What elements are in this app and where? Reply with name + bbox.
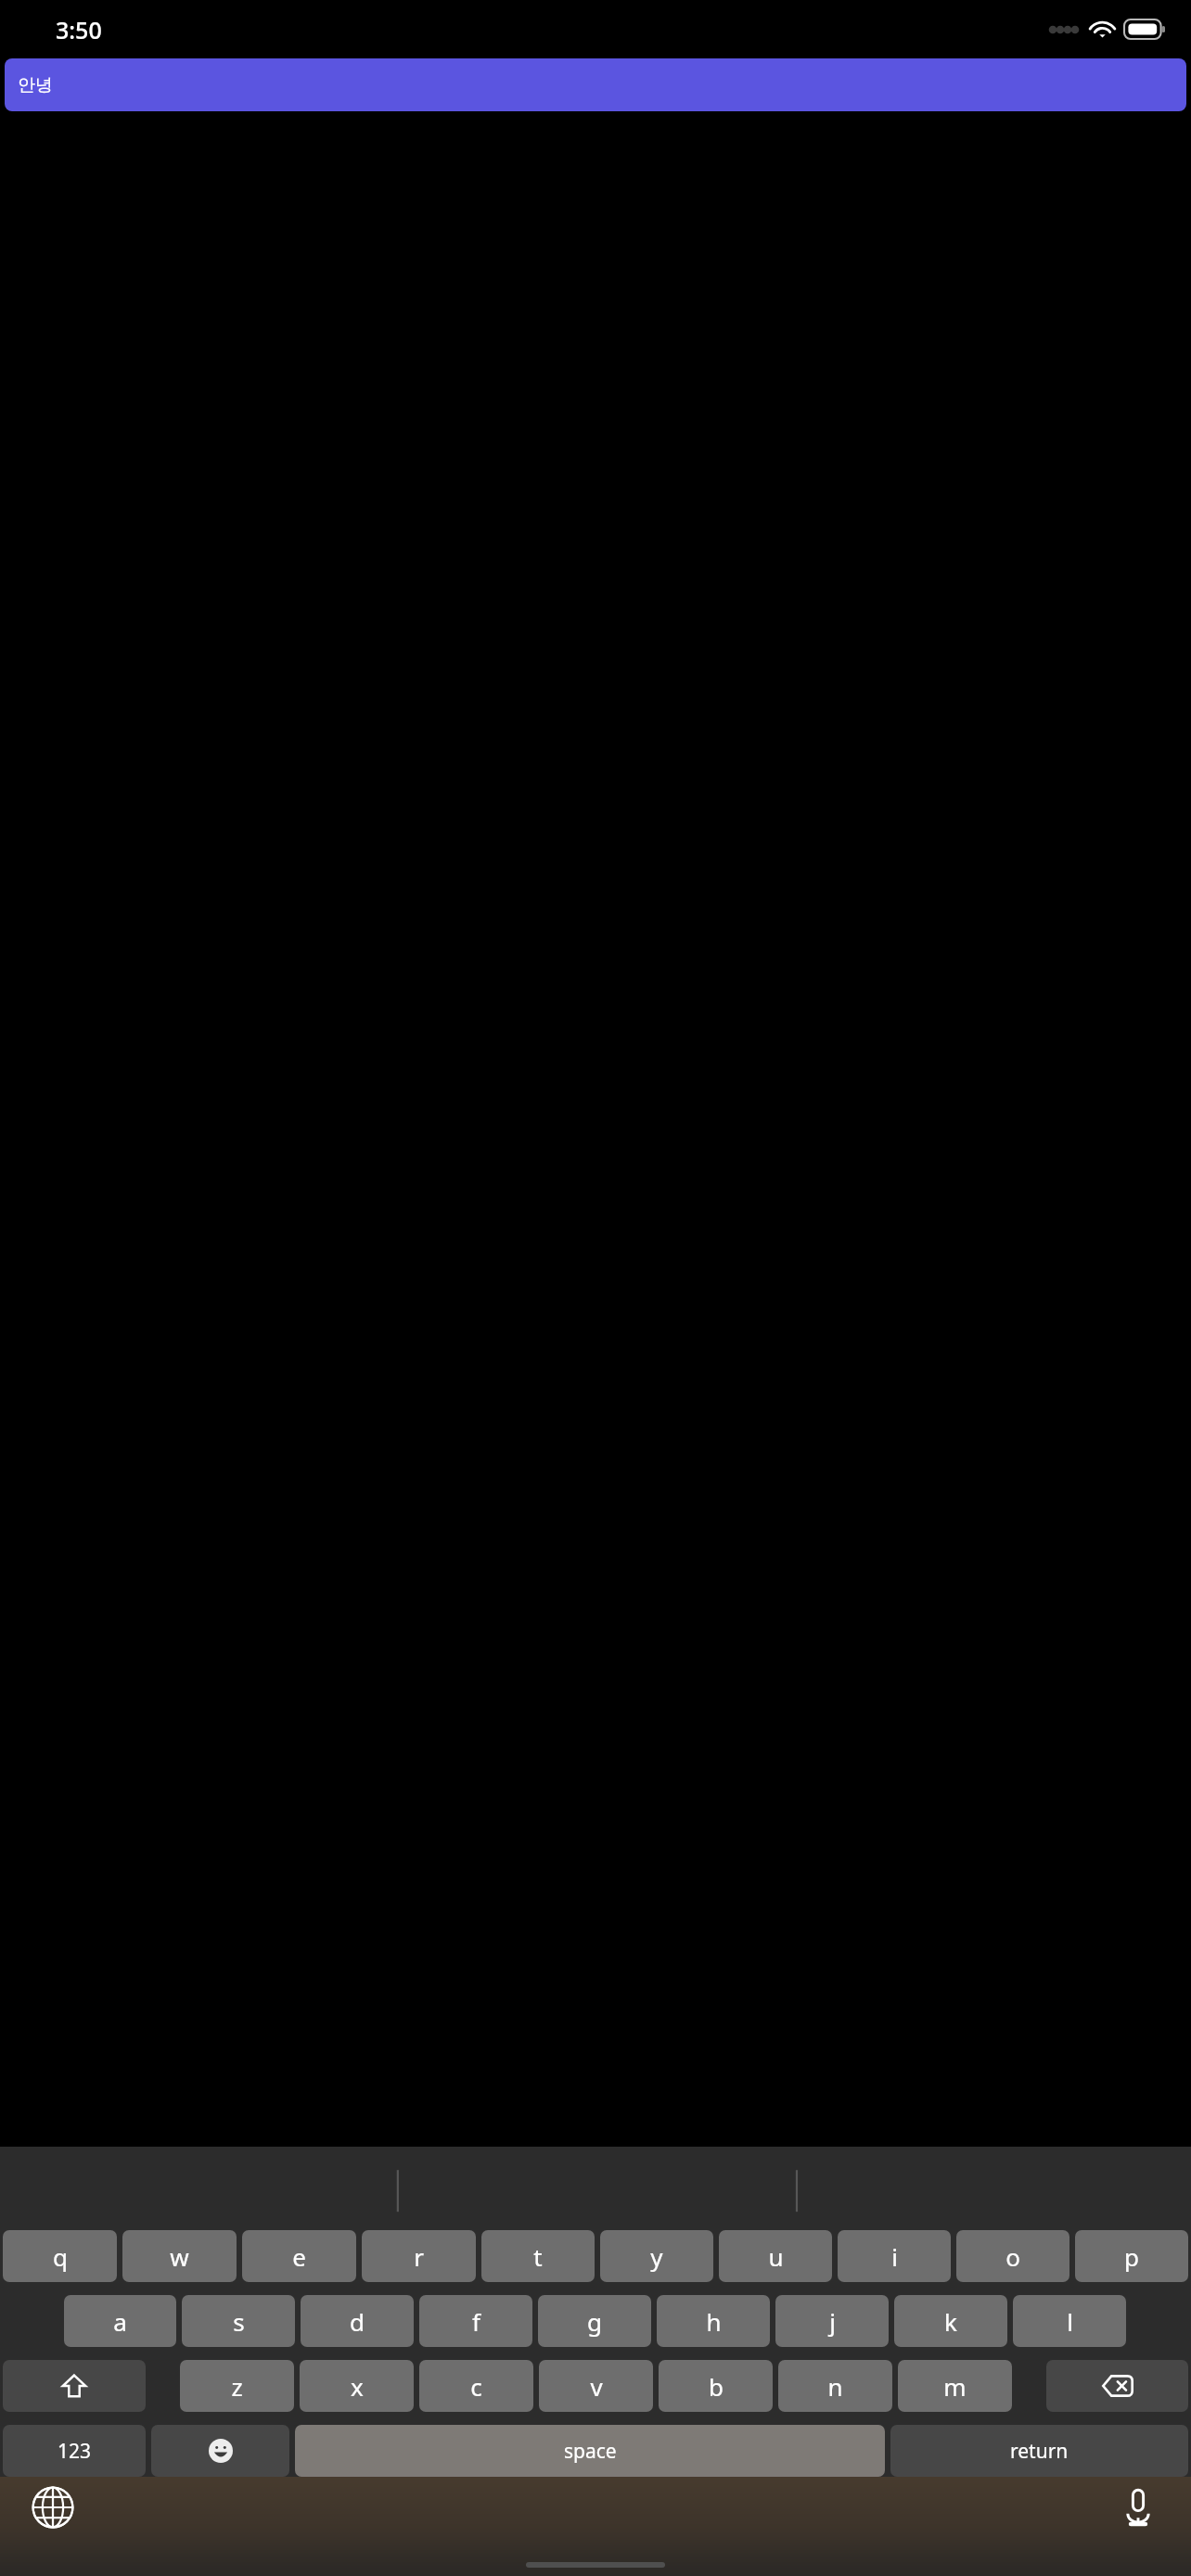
- button[interactable]: r: [362, 2230, 476, 2282]
- staticText: u: [768, 2240, 784, 2273]
- staticText: x: [351, 2370, 364, 2403]
- button[interactable]: n: [778, 2360, 892, 2412]
- button[interactable]: o: [956, 2230, 1069, 2282]
- staticText: r: [414, 2240, 424, 2273]
- button[interactable]: w: [122, 2230, 237, 2282]
- staticText: 안녕: [18, 74, 53, 96]
- button[interactable]: k: [894, 2295, 1007, 2347]
- staticText: o: [1005, 2240, 1020, 2273]
- button[interactable]: p: [1075, 2230, 1188, 2282]
- staticText: y: [650, 2240, 663, 2273]
- staticText: i: [891, 2240, 898, 2273]
- staticText: k: [944, 2305, 957, 2338]
- button[interactable]: i: [838, 2230, 951, 2282]
- staticText: p: [1124, 2240, 1139, 2273]
- staticText: l: [1067, 2305, 1073, 2338]
- staticText: space: [564, 2438, 617, 2465]
- button[interactable]: v: [539, 2360, 653, 2412]
- button[interactable]: h: [657, 2295, 770, 2347]
- staticText: return: [1010, 2438, 1069, 2465]
- staticText: s: [233, 2305, 245, 2338]
- staticText: f: [472, 2305, 480, 2338]
- button[interactable]: space: [295, 2425, 885, 2477]
- staticText: 3:50: [56, 14, 102, 45]
- button[interactable]: f: [419, 2295, 532, 2347]
- staticText: m: [943, 2370, 967, 2403]
- staticText: w: [170, 2240, 189, 2273]
- staticText: q: [53, 2240, 68, 2273]
- staticText: c: [470, 2370, 482, 2403]
- staticText: a: [113, 2305, 127, 2338]
- button[interactable]: l: [1013, 2295, 1126, 2347]
- staticText: z: [231, 2370, 243, 2403]
- button[interactable]: x: [300, 2360, 414, 2412]
- button[interactable]: e: [242, 2230, 356, 2282]
- staticText: 123: [58, 2438, 92, 2465]
- staticText: d: [350, 2305, 365, 2338]
- button[interactable]: t: [481, 2230, 595, 2282]
- staticText: j: [829, 2305, 836, 2338]
- button[interactable]: m: [898, 2360, 1012, 2412]
- button[interactable]: z: [180, 2360, 294, 2412]
- button[interactable]: g: [538, 2295, 651, 2347]
- button[interactable]: Dictation: [1109, 2479, 1167, 2536]
- button[interactable]: s: [182, 2295, 295, 2347]
- button[interactable]: b: [659, 2360, 773, 2412]
- button[interactable]: 안녕: [5, 58, 1186, 111]
- button[interactable]: c: [419, 2360, 533, 2412]
- button[interactable]: a: [64, 2295, 176, 2347]
- button[interactable]: y: [600, 2230, 713, 2282]
- staticText: e: [292, 2240, 306, 2273]
- button[interactable]: j: [775, 2295, 889, 2347]
- button[interactable]: d: [301, 2295, 414, 2347]
- staticText: v: [590, 2370, 603, 2403]
- staticText: b: [709, 2370, 724, 2403]
- button[interactable]: Backspace: [1046, 2360, 1188, 2412]
- button[interactable]: return: [890, 2425, 1188, 2477]
- button[interactable]: u: [719, 2230, 832, 2282]
- staticText: t: [533, 2240, 543, 2273]
- staticText: h: [706, 2305, 722, 2338]
- button[interactable]: Emoji: [151, 2425, 289, 2477]
- button[interactable]: q: [3, 2230, 117, 2282]
- button[interactable]: Shift: [3, 2360, 146, 2412]
- staticText: g: [587, 2305, 602, 2338]
- staticText: n: [827, 2370, 843, 2403]
- button[interactable]: Change keyboard language: [24, 2479, 82, 2536]
- button[interactable]: 123: [3, 2425, 146, 2477]
